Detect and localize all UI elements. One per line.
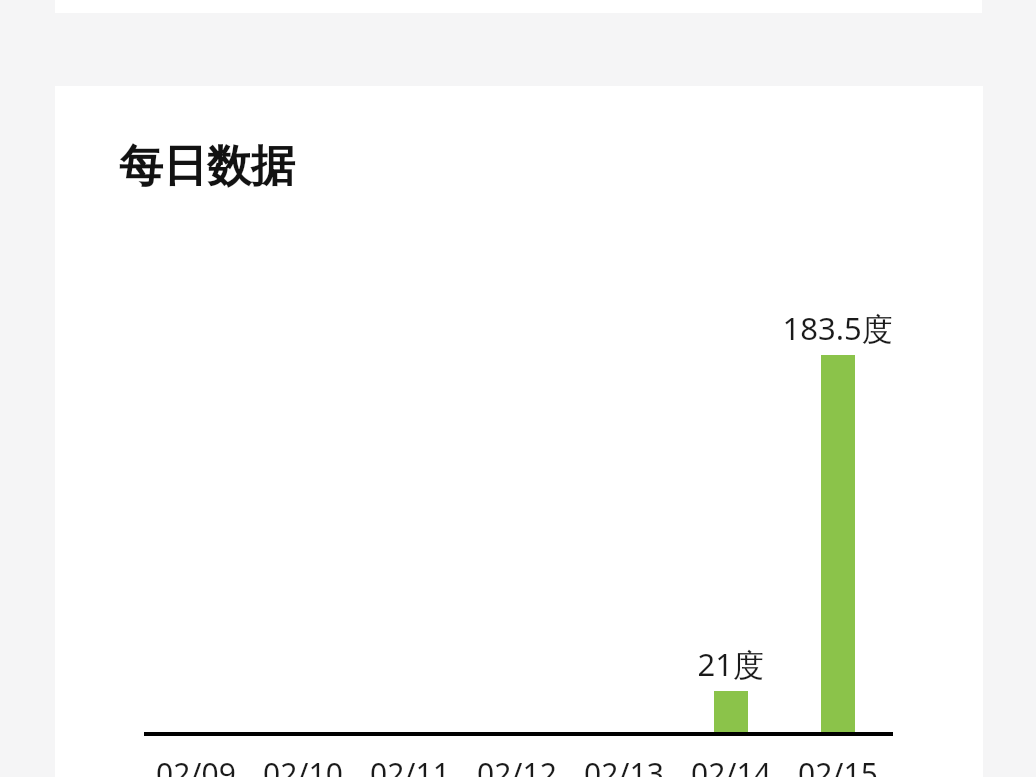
button[interactable]: 每日数据柱状图	[0, 0, 1036, 777]
